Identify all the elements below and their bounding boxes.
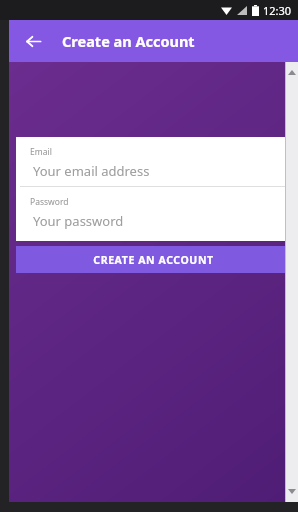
button[interactable]: Password bbox=[16, 187, 291, 236]
staticText: Email bbox=[30, 146, 52, 158]
staticText: 12:30 bbox=[263, 3, 292, 18]
staticText: Your password bbox=[33, 212, 124, 230]
button[interactable]: Email bbox=[16, 137, 291, 186]
staticText: Password bbox=[30, 196, 69, 208]
button[interactable]: CREATE AN ACCOUNT bbox=[16, 246, 291, 273]
button[interactable]: Scroll up bbox=[286, 67, 297, 78]
button[interactable]: Back bbox=[17, 25, 49, 57]
staticText: Create an Account bbox=[62, 31, 195, 51]
staticText: Your email address bbox=[33, 162, 150, 180]
staticText: CREATE AN ACCOUNT bbox=[93, 253, 214, 267]
button[interactable]: Scroll down bbox=[286, 486, 297, 497]
